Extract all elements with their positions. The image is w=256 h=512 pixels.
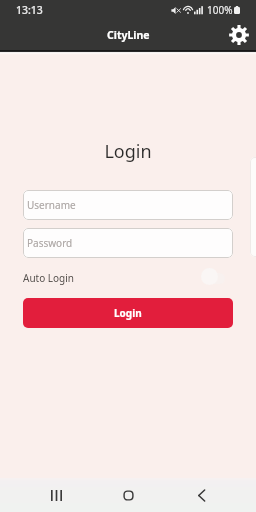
button[interactable]: Settings — [227, 23, 251, 47]
button[interactable]: Home — [111, 478, 145, 512]
staticText: Login — [0, 139, 256, 164]
staticText: Login — [114, 306, 142, 320]
staticText: Auto Login — [23, 271, 75, 285]
staticText: Password — [27, 236, 73, 250]
staticText: 100% — [207, 3, 233, 17]
button[interactable]: Username — [23, 190, 233, 220]
staticText: CityLine — [107, 28, 150, 42]
button[interactable]: Auto Login — [23, 267, 233, 289]
button[interactable]: Login — [23, 298, 233, 328]
staticText: Username — [27, 198, 76, 212]
button[interactable]: Password — [23, 228, 233, 258]
staticText: 13:13 — [16, 3, 43, 17]
button[interactable]: Back — [184, 478, 218, 512]
button[interactable]: Recent apps — [39, 478, 73, 512]
button[interactable]: Auto login toggle — [201, 270, 233, 287]
